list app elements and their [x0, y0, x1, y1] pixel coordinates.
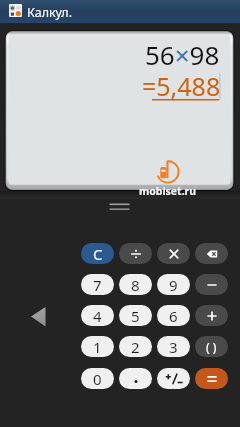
- button[interactable]: 9: [157, 274, 190, 295]
- staticText: 2: [131, 337, 140, 357]
- button[interactable]: 3: [157, 336, 190, 357]
- staticText: 9: [169, 275, 178, 295]
- button[interactable]: Multiply: [157, 243, 190, 264]
- button[interactable]: 4: [81, 305, 114, 326]
- button[interactable]: Minus: [195, 274, 228, 295]
- staticText: 0: [93, 369, 102, 389]
- button[interactable]: ( ): [195, 336, 228, 357]
- button[interactable]: 2: [119, 336, 152, 357]
- staticText: ( ): [206, 339, 217, 355]
- staticText: C: [93, 244, 103, 264]
- staticText: 6: [169, 306, 178, 326]
- button[interactable]: C: [81, 243, 114, 264]
- staticText: 4: [93, 306, 102, 326]
- button[interactable]: 0: [81, 368, 114, 389]
- staticText: =5,488: [142, 69, 221, 99]
- staticText: 3: [169, 337, 178, 357]
- button[interactable]: Decimal point: [157, 368, 190, 389]
- staticText: 56×98: [145, 37, 220, 67]
- button[interactable]: Backspace: [195, 243, 228, 264]
- staticText: Калкул.: [27, 4, 73, 21]
- button[interactable]: Plus: [195, 305, 228, 326]
- button[interactable]: Divide: [119, 243, 152, 264]
- button[interactable]: 8: [119, 274, 152, 295]
- button[interactable]: 1: [81, 336, 114, 357]
- button[interactable]: Decimal point: [119, 368, 152, 389]
- staticText: 8: [131, 275, 140, 295]
- staticText: 7: [93, 275, 102, 295]
- staticText: mobiset.ru: [139, 184, 197, 198]
- button[interactable]: 7: [81, 274, 114, 295]
- staticText: 1: [93, 337, 102, 357]
- button[interactable]: 5: [119, 305, 152, 326]
- button[interactable]: Equals: [195, 368, 228, 389]
- staticText: 5: [131, 306, 140, 326]
- button[interactable]: 6: [157, 305, 190, 326]
